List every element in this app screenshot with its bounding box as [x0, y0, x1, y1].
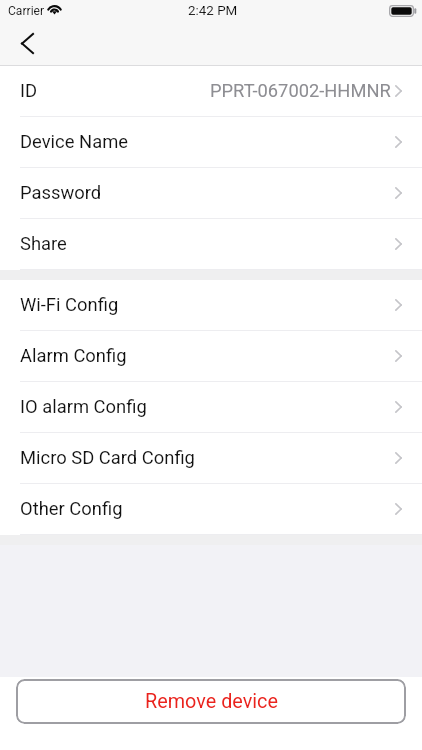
staticText: Device Name: [20, 131, 129, 153]
button[interactable]: Micro SD Card Config: [0, 433, 422, 484]
staticText: Alarm Config: [20, 345, 127, 367]
staticText: ID: [20, 80, 38, 102]
button[interactable]: Password: [0, 168, 422, 219]
staticText: Remove device: [145, 690, 278, 713]
button[interactable]: Alarm Config: [0, 331, 422, 382]
button[interactable]: Back: [8, 22, 46, 65]
button[interactable]: Other Config: [0, 484, 422, 535]
button[interactable]: IO alarm Config: [0, 382, 422, 433]
staticText: Wi-Fi Config: [20, 294, 119, 316]
button[interactable]: Remove device: [16, 679, 406, 724]
staticText: Share: [20, 233, 67, 255]
staticText: Carrier: [8, 4, 45, 18]
staticText: Password: [20, 182, 102, 204]
staticText: PPRT-067002-HHMNR: [210, 80, 391, 101]
button[interactable]: Wi-Fi Config: [0, 280, 422, 331]
staticText: IO alarm Config: [20, 396, 147, 418]
button[interactable]: Share: [0, 219, 422, 270]
button[interactable]: ID: [0, 66, 422, 117]
button[interactable]: Device Name: [0, 117, 422, 168]
staticText: 2:42 PM: [188, 3, 238, 19]
staticText: Micro SD Card Config: [20, 447, 195, 469]
staticText: Other Config: [20, 498, 123, 520]
